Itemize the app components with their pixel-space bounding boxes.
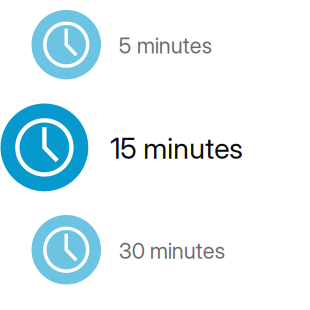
staticText: 30 minutes (119, 238, 225, 264)
button[interactable]: 30 minutes (0, 215, 310, 284)
button[interactable]: 15 minutes (0, 103, 310, 191)
staticText: 15 minutes (110, 131, 243, 166)
button[interactable]: 5 minutes (0, 10, 310, 79)
staticText: 5 minutes (119, 32, 212, 59)
